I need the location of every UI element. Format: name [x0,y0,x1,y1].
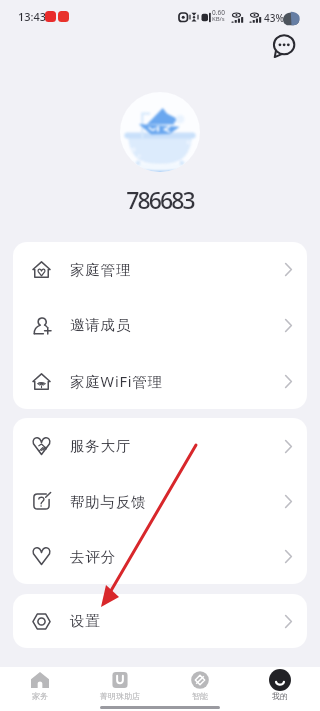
staticText: 43% [264,11,284,25]
staticText: 服务大厅 [70,437,132,455]
staticText: 家庭WiFi管理 [70,371,163,391]
staticText: 家庭管理 [70,261,132,279]
staticText: 菁明珠助店 [100,691,140,701]
button[interactable]: 菁明珠助店 [80,667,160,701]
button[interactable]: 设置 [13,594,307,648]
staticText: 邀请成员 [70,316,132,334]
staticText: 智能 [192,691,208,701]
button[interactable]: 智能 [160,667,240,701]
staticText: 786683 [0,184,320,215]
button[interactable]: 去评分 [13,529,307,584]
button[interactable]: 邀请成员 [13,297,307,353]
staticText: 0.60 [212,8,225,17]
staticText: 我的 [272,691,288,701]
button[interactable]: Messages [272,34,296,58]
button[interactable]: Profile avatar [120,92,200,172]
staticText: 去评分 [70,548,116,566]
button[interactable]: 服务大厅 [13,418,307,474]
button[interactable]: 帮助与反馈 [13,474,307,529]
staticText: KB/s [212,15,225,23]
staticText: 家务 [32,691,48,701]
button[interactable]: 家庭WiFi管理 [13,353,307,409]
staticText: 帮助与反馈 [70,493,147,511]
button[interactable]: 我的 [240,667,320,701]
staticText: 设置 [70,612,101,630]
button[interactable]: 家庭管理 [13,242,307,297]
button[interactable]: 家务 [0,667,80,701]
staticText: 13:43 [18,9,47,24]
